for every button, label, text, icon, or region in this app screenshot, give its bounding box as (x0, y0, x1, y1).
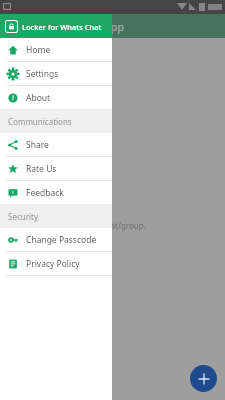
button[interactable]: About (0, 86, 112, 109)
staticText: Rate Us (26, 163, 57, 175)
staticText: Locker for Whats Chat App (22, 22, 112, 32)
staticText: Privacy Policy (26, 258, 80, 270)
staticText: Change Passcode (26, 234, 97, 246)
staticText: Whats Chat App (40, 19, 125, 34)
button[interactable]: Rate Us (0, 157, 112, 180)
button[interactable]: Feedback (0, 181, 112, 204)
button[interactable]: Settings (0, 62, 112, 85)
button[interactable]: Add chat or group (190, 365, 217, 392)
staticText: Tap on + icon to add chat/group. (24, 220, 146, 231)
button[interactable]: Change Passcode (0, 228, 112, 251)
staticText: Feedback (26, 187, 64, 199)
staticText: Settings (26, 68, 59, 80)
staticText: Share (26, 139, 49, 151)
staticText: Home (26, 44, 51, 56)
button[interactable]: Share (0, 133, 112, 156)
button[interactable]: Home (0, 38, 112, 61)
button[interactable]: Privacy Policy (0, 252, 112, 275)
staticText: Security (8, 211, 39, 222)
staticText: About (26, 92, 51, 104)
staticText: Communications (8, 116, 72, 127)
